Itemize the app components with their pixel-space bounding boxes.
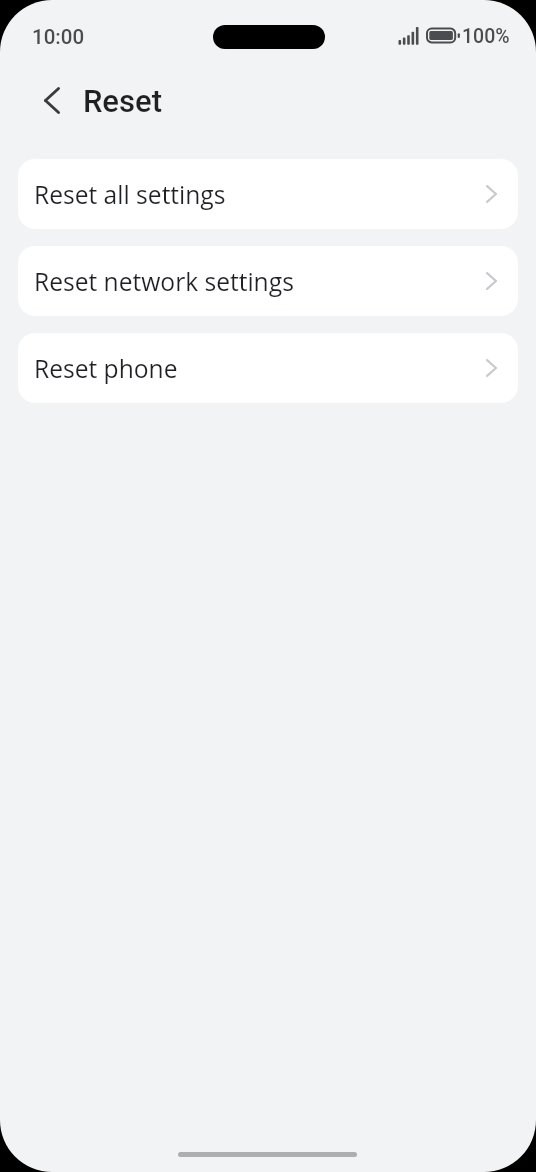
button[interactable]: Back	[30, 78, 74, 122]
staticText: Reset	[83, 83, 162, 119]
button[interactable]: Reset all settings	[18, 159, 518, 229]
staticText: Reset phone	[34, 352, 486, 386]
button[interactable]: Reset network settings	[18, 246, 518, 316]
staticText: Reset all settings	[34, 178, 486, 212]
staticText: 100%	[462, 25, 510, 48]
button[interactable]: Reset phone	[18, 333, 518, 403]
staticText: 10:00	[32, 25, 85, 49]
staticText: Reset network settings	[34, 265, 486, 299]
